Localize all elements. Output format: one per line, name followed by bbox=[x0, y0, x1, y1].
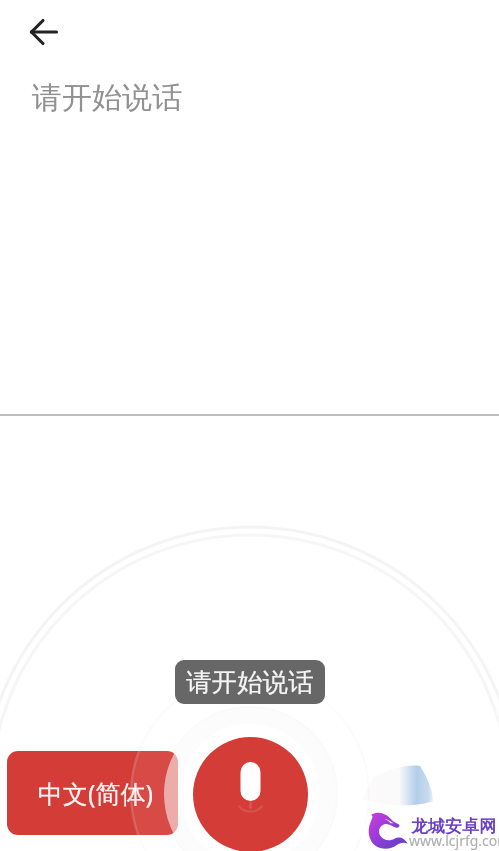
staticText: 请开始说话 bbox=[32, 79, 182, 117]
button[interactable]: Back bbox=[24, 12, 64, 52]
staticText: 中文(简体) bbox=[38, 776, 154, 810]
button[interactable]: 中文(简体) bbox=[7, 751, 178, 835]
button[interactable]: Microphone bbox=[193, 737, 308, 851]
staticText: 龙城安卓网 bbox=[411, 816, 496, 837]
staticText: www.lcjrfg.com bbox=[409, 831, 499, 850]
staticText: 请开始说话 bbox=[186, 666, 314, 698]
